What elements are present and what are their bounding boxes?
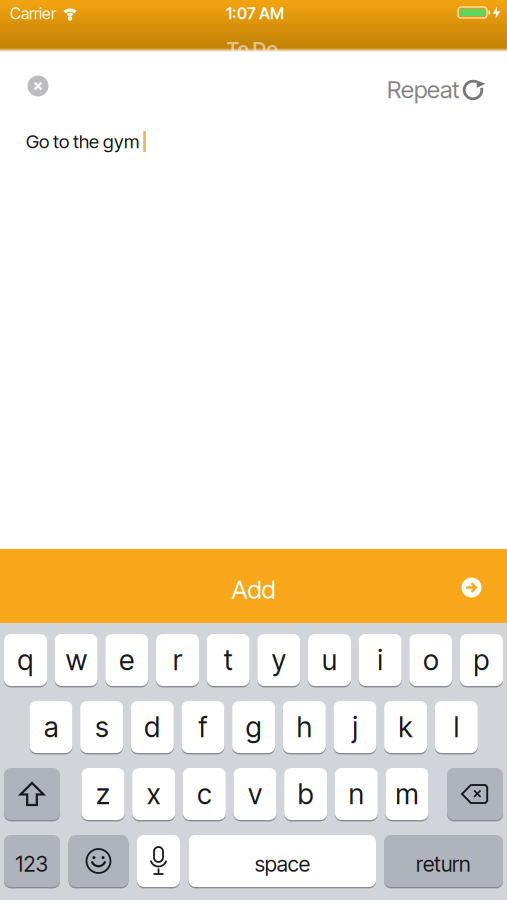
staticText: j — [352, 710, 357, 743]
staticText: r — [173, 643, 182, 676]
button[interactable]: p — [460, 633, 503, 687]
button[interactable]: y — [257, 633, 300, 687]
staticText: 123 — [15, 851, 48, 877]
button[interactable]: return — [384, 834, 503, 888]
staticText: Carrier — [10, 4, 56, 23]
staticText: y — [272, 643, 286, 676]
button[interactable]: k — [384, 700, 427, 754]
staticText: n — [349, 777, 364, 810]
staticText: p — [473, 643, 489, 676]
staticText: k — [399, 710, 413, 743]
button[interactable]: o — [409, 633, 452, 687]
button[interactable]: x — [132, 767, 175, 821]
staticText: d — [144, 710, 160, 743]
staticText: space — [255, 851, 310, 877]
button[interactable]: 123 — [4, 834, 60, 888]
button[interactable]: u — [308, 633, 351, 687]
button[interactable]: Dictate — [137, 834, 180, 888]
staticText: Repeat — [387, 75, 460, 104]
staticText: v — [248, 777, 262, 810]
button[interactable]: d — [131, 700, 174, 754]
staticText: 1:07 AM — [226, 4, 284, 23]
button[interactable]: z — [81, 767, 124, 821]
staticText: z — [96, 777, 110, 810]
staticText: u — [322, 643, 337, 676]
button[interactable]: h — [283, 700, 326, 754]
staticText: b — [298, 777, 314, 810]
button[interactable]: n — [335, 767, 378, 821]
staticText: Add — [231, 575, 275, 604]
staticText: h — [297, 710, 312, 743]
staticText: return — [416, 851, 471, 877]
button[interactable]: Close — [23, 71, 53, 101]
button[interactable]: space — [188, 834, 376, 888]
button[interactable]: s — [80, 700, 123, 754]
staticText: a — [44, 710, 58, 743]
button[interactable]: Shift — [4, 767, 60, 821]
staticText: t — [224, 643, 233, 676]
staticText: m — [395, 777, 418, 810]
staticText: i — [378, 643, 383, 676]
staticText: w — [66, 643, 87, 676]
staticText: c — [197, 777, 211, 810]
button[interactable]: g — [232, 700, 275, 754]
button[interactable]: i — [359, 633, 402, 687]
button[interactable]: c — [183, 767, 226, 821]
staticText: g — [246, 710, 262, 743]
staticText: l — [454, 710, 459, 743]
button[interactable]: b — [284, 767, 327, 821]
button[interactable]: m — [385, 767, 428, 821]
staticText: e — [119, 643, 134, 676]
button[interactable]: w — [55, 633, 98, 687]
button[interactable]: Add — [0, 549, 507, 623]
button[interactable]: e — [105, 633, 148, 687]
button[interactable]: a — [29, 700, 72, 754]
button[interactable]: Repeat — [387, 75, 485, 104]
staticText: Go to the gym — [26, 130, 139, 152]
button[interactable]: r — [156, 633, 199, 687]
button[interactable]: Emoji — [68, 834, 128, 888]
button[interactable]: j — [333, 700, 376, 754]
button[interactable]: l — [435, 700, 478, 754]
staticText: s — [95, 710, 108, 743]
staticText: x — [147, 777, 161, 810]
staticText: f — [198, 710, 207, 743]
button[interactable]: t — [207, 633, 250, 687]
button[interactable]: q — [4, 633, 47, 687]
button[interactable]: f — [181, 700, 224, 754]
staticText: q — [17, 643, 33, 676]
button[interactable]: Delete — [447, 767, 503, 821]
staticText: o — [423, 643, 438, 676]
staticText: To Do — [226, 37, 277, 61]
button[interactable]: v — [233, 767, 276, 821]
